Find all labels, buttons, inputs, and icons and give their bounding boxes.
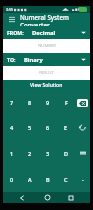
button[interactable]: NUMBER xyxy=(3,39,90,53)
staticText: 4 xyxy=(10,124,14,131)
staticText: 3:55 xyxy=(6,7,13,12)
button[interactable]: Home xyxy=(41,192,53,203)
staticText: 9 xyxy=(46,99,50,106)
button[interactable]: 5 xyxy=(21,115,39,140)
staticText: 8 xyxy=(28,99,32,106)
button[interactable]: Open navigation menu xyxy=(3,13,90,26)
button[interactable]: Open navigation menu xyxy=(7,15,16,24)
staticText: A xyxy=(28,176,32,183)
button[interactable]: 9 xyxy=(39,90,57,115)
button[interactable]: A xyxy=(21,166,39,192)
staticText: 5 xyxy=(28,124,32,131)
button[interactable]: E xyxy=(57,115,75,140)
button[interactable]: FROM: xyxy=(3,26,90,39)
staticText: 0 xyxy=(10,176,14,183)
staticText: Numeral System Converter xyxy=(20,13,86,26)
staticText: E xyxy=(64,124,68,131)
staticText: RESULT xyxy=(39,70,54,76)
button[interactable]: RESULT xyxy=(3,66,90,80)
button[interactable]: Swap numeral systems xyxy=(75,115,90,140)
button[interactable]: 7 xyxy=(3,90,21,115)
button[interactable]: 2 xyxy=(21,140,39,166)
staticText: 3 xyxy=(46,150,50,157)
staticText: C xyxy=(64,176,68,183)
staticText: F xyxy=(65,99,68,106)
staticText: . xyxy=(82,175,84,183)
button[interactable]: 3 xyxy=(39,140,57,166)
button[interactable]: . xyxy=(75,166,90,192)
staticText: B xyxy=(46,176,50,183)
button[interactable]: 0 xyxy=(3,166,21,192)
staticText: 7 xyxy=(10,99,14,106)
staticText: D xyxy=(64,150,69,157)
staticText: 2 xyxy=(28,150,32,157)
button[interactable]: TO: xyxy=(3,53,90,66)
button[interactable]: B xyxy=(39,166,57,192)
button[interactable]: Back xyxy=(16,192,28,203)
button[interactable]: 1 xyxy=(3,140,21,166)
staticText: 1 xyxy=(10,150,14,157)
button[interactable]: F xyxy=(57,90,75,115)
button[interactable]: Recent apps xyxy=(65,192,77,203)
staticText: TO: xyxy=(7,56,16,63)
staticText: FROM: xyxy=(7,29,24,36)
button[interactable]: C xyxy=(57,166,75,192)
button[interactable]: Backspace xyxy=(77,99,88,107)
button[interactable]: Equals, convert xyxy=(75,140,90,166)
staticText: Binary xyxy=(24,56,43,64)
staticText: Decimal xyxy=(32,29,56,37)
button[interactable]: D xyxy=(57,140,75,166)
staticText: NUMBER xyxy=(38,43,56,49)
button[interactable]: 4 xyxy=(3,115,21,140)
button[interactable]: 8 xyxy=(21,90,39,115)
button[interactable]: 6 xyxy=(39,115,57,140)
staticText: View Solution xyxy=(30,82,63,89)
button[interactable]: View Solution xyxy=(3,80,90,90)
staticText: 6 xyxy=(46,124,50,131)
